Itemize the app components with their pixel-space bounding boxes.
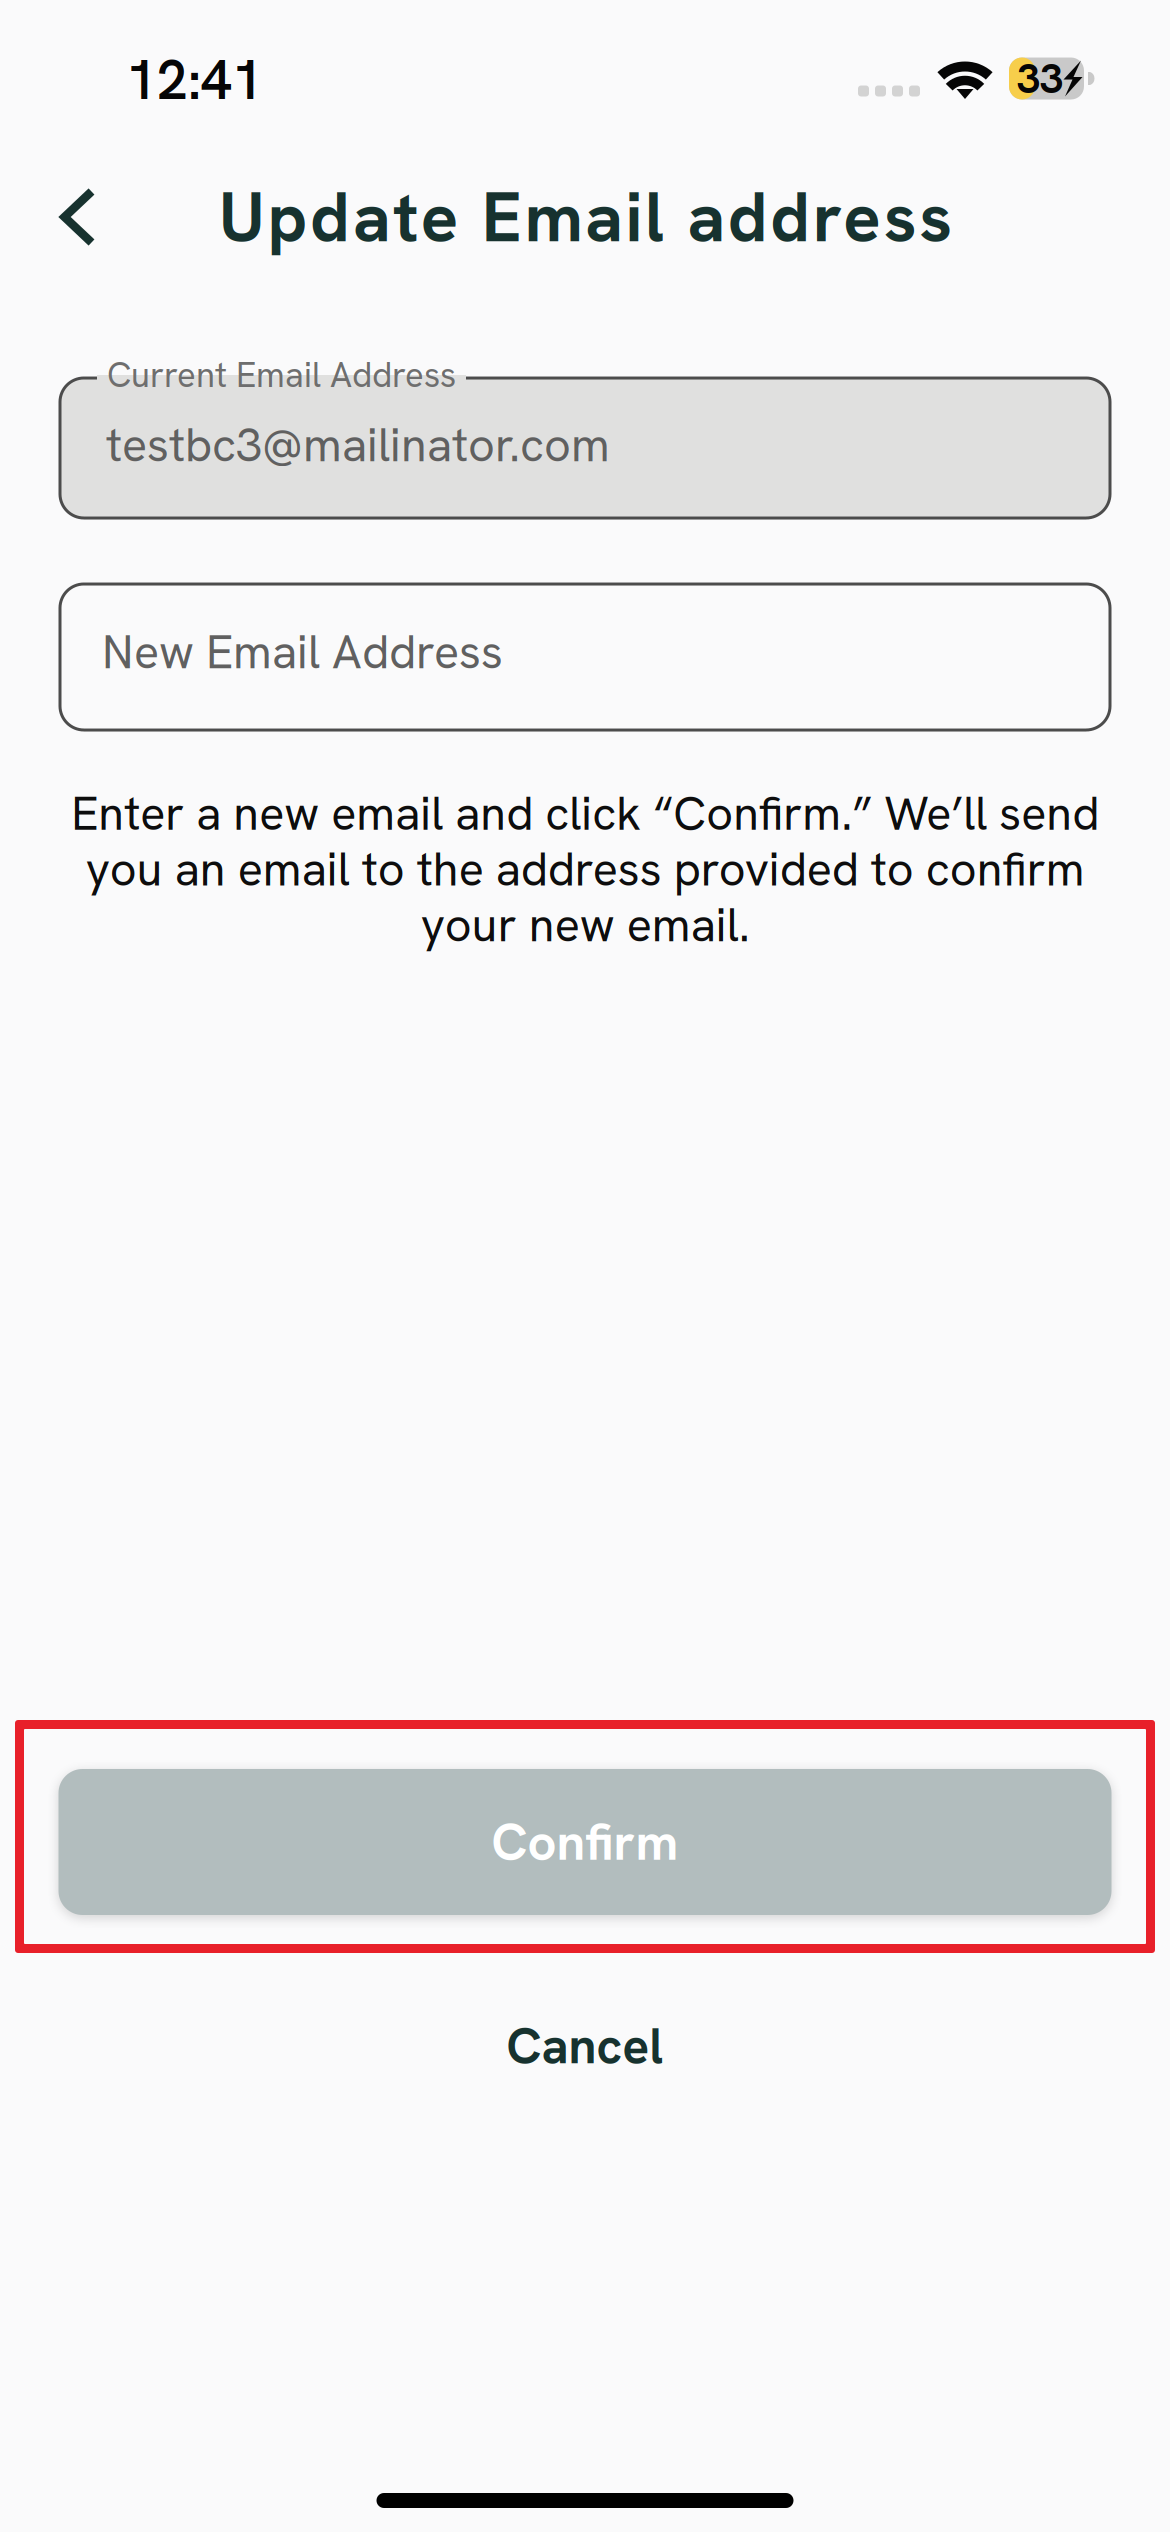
staticText: Enter a new email and click “Confirm.” W… — [71, 783, 1099, 955]
staticText: Update Email address — [219, 172, 952, 262]
button[interactable]: Cancel — [60, 1970, 1110, 2122]
staticText: 12:41 — [126, 44, 263, 116]
button[interactable]: Back — [0, 165, 131, 269]
staticText: testbc3@mailinator.com — [106, 415, 610, 475]
staticText: New Email Address — [102, 622, 503, 682]
staticText: Cancel — [506, 2014, 663, 2078]
staticText: Current Email Address — [107, 352, 456, 398]
button[interactable]: Confirm — [58, 1769, 1111, 1915]
staticText: Confirm — [491, 1809, 678, 1875]
staticText: 33 — [1017, 52, 1063, 105]
